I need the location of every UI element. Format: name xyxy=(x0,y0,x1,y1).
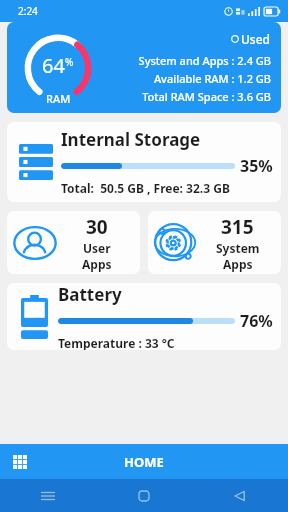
staticText: RAM xyxy=(46,91,71,106)
staticText: Apps xyxy=(223,256,253,272)
staticText: 64 xyxy=(42,52,65,79)
staticText: Total RAM Space : 3.6 GB xyxy=(142,89,271,104)
staticText: 76% xyxy=(240,310,273,332)
staticText: 315 xyxy=(221,214,254,240)
staticText: Total: 50.5 GB , Free: 32.3 GB xyxy=(61,180,230,196)
other: Home xyxy=(138,490,150,502)
staticText: HOME xyxy=(124,453,164,471)
other: Apps menu xyxy=(13,455,27,469)
staticText: Used xyxy=(241,31,271,47)
other: User apps xyxy=(13,221,57,265)
other: Back xyxy=(234,490,246,502)
button[interactable]: Apps menu xyxy=(0,444,288,479)
staticText: User xyxy=(83,240,111,256)
staticText: System and Apps : 2.4 GB xyxy=(138,53,271,68)
staticText: Temperature : 33 °C xyxy=(58,335,175,350)
staticText: Available RAM : 1.2 GB xyxy=(153,71,271,86)
button[interactable]: User apps xyxy=(7,211,140,274)
staticText: 35% xyxy=(240,155,273,177)
other: Recents xyxy=(41,489,55,503)
staticText: % xyxy=(65,55,74,69)
other: Storage xyxy=(19,144,53,180)
staticText: 2:24 xyxy=(18,4,38,18)
button[interactable]: System apps xyxy=(148,211,281,274)
staticText: 30 xyxy=(86,214,108,240)
staticText: Internal Storage xyxy=(61,128,201,151)
button[interactable]: 64 xyxy=(7,22,281,113)
other: Battery xyxy=(21,295,48,339)
other: System apps xyxy=(153,221,197,265)
button[interactable]: Storage xyxy=(7,122,281,202)
button[interactable]: Battery xyxy=(7,283,281,350)
staticText: System xyxy=(216,240,260,256)
staticText: Apps xyxy=(82,256,112,272)
staticText: Battery xyxy=(58,283,122,306)
